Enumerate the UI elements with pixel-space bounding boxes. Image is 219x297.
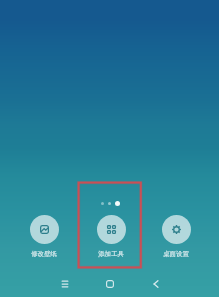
- staticText: 修改壁纸: [31, 250, 57, 258]
- button[interactable]: 修改壁纸: [27, 215, 61, 258]
- staticText: 添加工具: [98, 250, 124, 258]
- button[interactable]: Back: [144, 272, 168, 296]
- button[interactable]: 桌面设置: [159, 215, 193, 258]
- button[interactable]: 添加工具: [94, 215, 128, 258]
- staticText: 桌面设置: [163, 250, 189, 258]
- button[interactable]: Recent apps: [53, 272, 77, 296]
- button[interactable]: Home: [98, 272, 122, 296]
